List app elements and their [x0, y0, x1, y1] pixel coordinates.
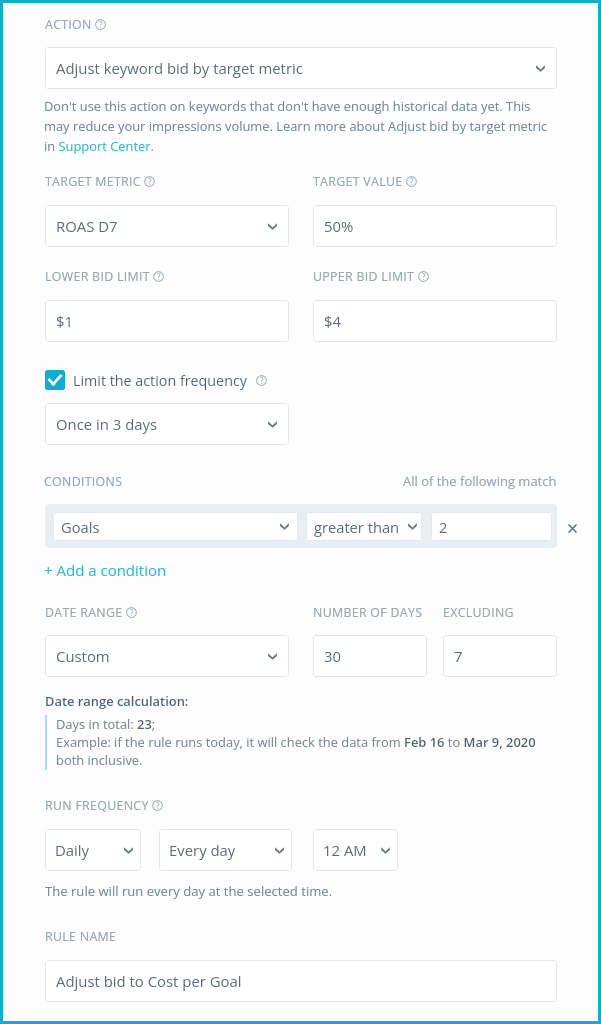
button[interactable]: + Add a condition: [44, 560, 167, 580]
button[interactable]: Adjust keyword bid by target metric: [45, 47, 557, 89]
staticText: $4: [324, 311, 342, 331]
staticText: EXCLUDING: [443, 604, 514, 621]
button[interactable]: $4: [313, 300, 557, 342]
staticText: ?: [260, 375, 264, 386]
staticText: TARGET VALUE: [313, 173, 403, 190]
staticText: Limit the action frequency: [73, 371, 247, 390]
button[interactable]: Daily: [45, 829, 141, 871]
staticText: 12 AM: [323, 840, 376, 860]
button[interactable]: Adjust bid to Cost per Goal: [45, 960, 557, 1002]
staticText: CONDITIONS: [44, 473, 123, 490]
staticText: DATE RANGE: [45, 604, 123, 621]
button[interactable]: Remove condition: [563, 519, 582, 538]
button[interactable]: 2: [431, 512, 552, 541]
staticText: Once in 3 days: [56, 414, 263, 434]
staticText: greater than: [314, 517, 403, 537]
button[interactable]: Once in 3 days: [45, 403, 289, 445]
staticText: UPPER BID LIMIT: [313, 268, 415, 285]
staticText: 7: [454, 646, 463, 666]
staticText: ?: [157, 271, 161, 282]
button[interactable]: Every day: [159, 829, 292, 871]
staticText: ?: [422, 271, 426, 282]
staticText: Adjust keyword bid by target metric: [56, 58, 531, 78]
staticText: Date range calculation:: [45, 692, 189, 710]
staticText: ?: [148, 176, 152, 187]
staticText: Adjust bid to Cost per Goal: [56, 971, 242, 991]
button[interactable]: ROAS D7: [45, 205, 289, 247]
staticText: NUMBER OF DAYS: [313, 604, 423, 621]
button[interactable]: 7: [443, 635, 557, 677]
staticText: Example: if the rule runs today, it will…: [56, 733, 561, 769]
staticText: ROAS D7: [56, 216, 263, 236]
staticText: Goals: [61, 517, 275, 537]
staticText: Custom: [56, 646, 263, 666]
staticText: LOWER BID LIMIT: [45, 268, 150, 285]
button[interactable]: greater than: [306, 512, 422, 541]
staticText: Daily: [55, 840, 119, 860]
staticText: RULE NAME: [45, 928, 117, 945]
staticText: + Add a condition: [44, 560, 167, 580]
staticText: ?: [99, 19, 103, 30]
staticText: Don't use this action on keywords that d…: [44, 97, 552, 154]
staticText: All of the following match: [403, 472, 557, 490]
staticText: 30: [324, 646, 342, 666]
button[interactable]: $1: [45, 300, 289, 342]
button[interactable]: 30: [313, 635, 427, 677]
button[interactable]: Limit the action frequency: [45, 370, 267, 390]
staticText: TARGET METRIC: [45, 173, 141, 190]
staticText: Every day: [169, 840, 270, 860]
staticText: ?: [156, 800, 160, 811]
button[interactable]: 12 AM: [313, 829, 398, 871]
staticText: 50%: [324, 216, 354, 236]
staticText: RUN FREQUENCY: [45, 797, 149, 814]
staticText: 2: [439, 517, 448, 537]
staticText: ?: [410, 176, 414, 187]
staticText: The rule will run every day at the selec…: [45, 882, 333, 900]
button[interactable]: Goals: [53, 512, 298, 541]
button[interactable]: Custom: [45, 635, 289, 677]
staticText: ?: [130, 607, 134, 618]
staticText: $1: [56, 311, 74, 331]
button[interactable]: 50%: [313, 205, 557, 247]
staticText: Days in total: 23;: [56, 715, 156, 733]
staticText: ACTION: [45, 16, 92, 33]
